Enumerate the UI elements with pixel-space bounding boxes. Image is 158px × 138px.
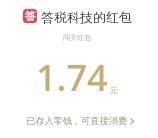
button[interactable]: 已存入零钱，可直接消费: [26, 115, 134, 127]
staticText: 答: [25, 9, 36, 23]
other: Open change wallet: [130, 118, 134, 125]
staticText: 已存入零钱，可直接消费: [26, 115, 128, 127]
staticText: 元: [110, 85, 118, 95]
staticText: 答税科技的红包: [41, 9, 132, 25]
staticText: 1.74: [36, 53, 108, 102]
staticText: 闯关红包: [63, 33, 91, 42]
button[interactable]: 答: [23, 9, 132, 25]
